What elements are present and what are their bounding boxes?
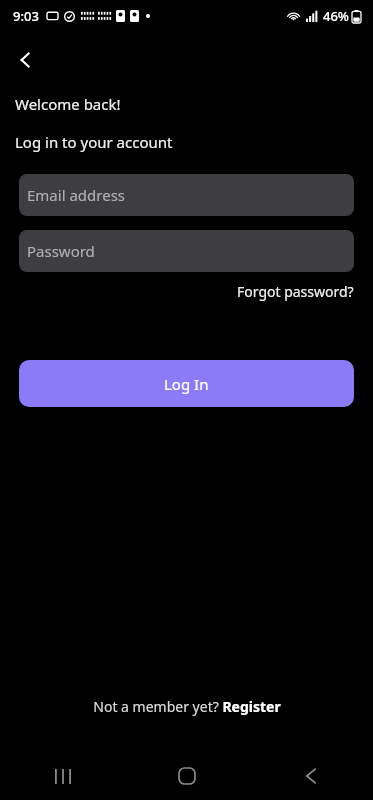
staticText: 46% [323,7,349,25]
button[interactable]: Back [249,752,373,800]
staticText: Password [27,241,95,261]
button[interactable]: Not a member yet? Register [0,697,373,716]
button[interactable]: Home [125,752,249,800]
staticText: Not a member yet? Register [93,697,281,716]
staticText: Welcome back! [15,94,121,114]
staticText: Log in to your account [15,132,173,152]
button[interactable]: Log In [19,360,354,407]
button[interactable]: Email address [19,174,354,216]
button[interactable]: Password [19,230,354,272]
staticText: Forgot password? [237,282,354,301]
staticText: 9:03 [13,7,39,25]
staticText: Log In [164,374,209,394]
staticText: Email address [27,185,126,205]
button[interactable]: Back [6,40,46,80]
button[interactable]: Recent apps [0,752,125,800]
button[interactable]: Forgot password? [235,279,356,304]
